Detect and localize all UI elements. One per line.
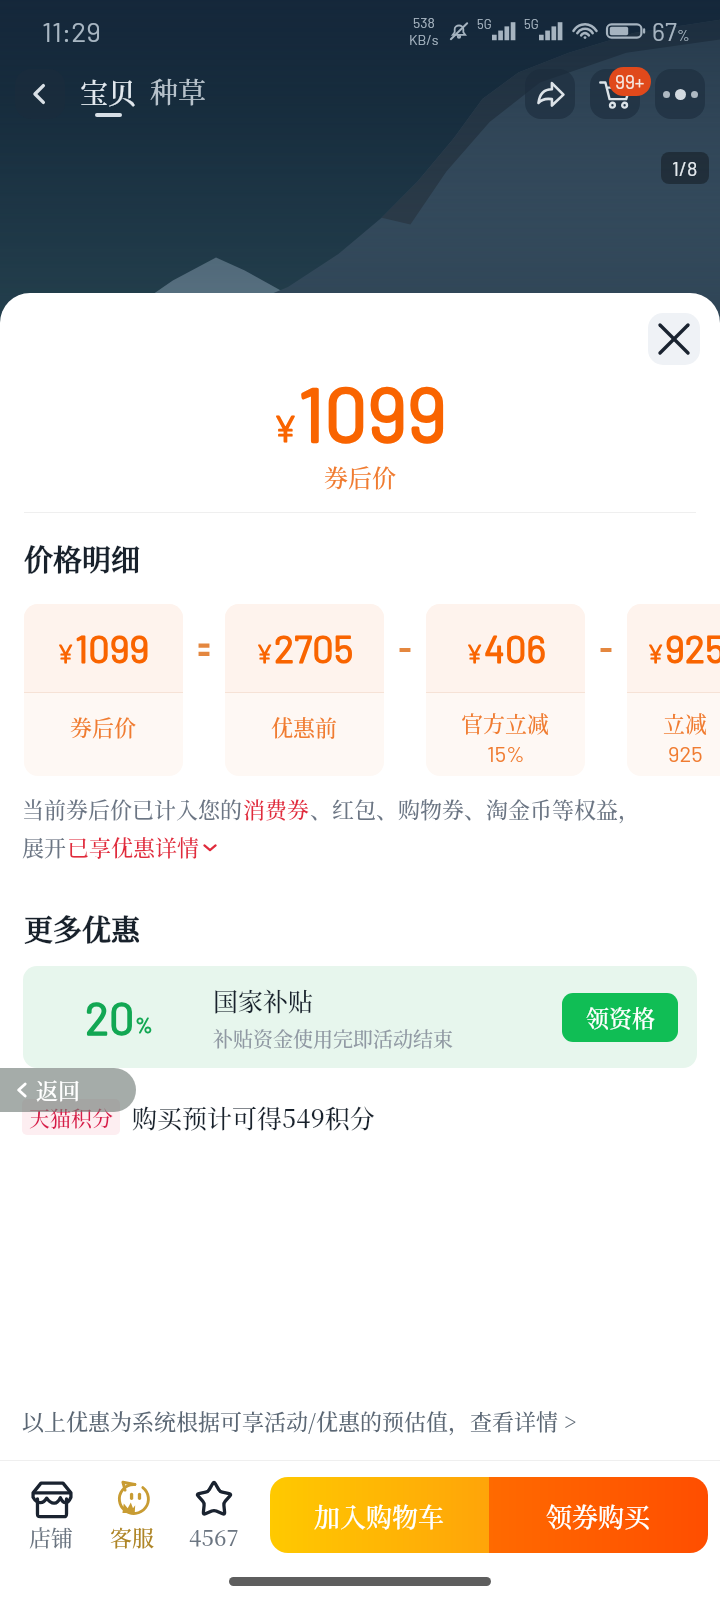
- staticText: ¥: [273, 406, 298, 449]
- button[interactable]: 加入购物车: [270, 1477, 489, 1553]
- button[interactable]: 4567: [173, 1477, 254, 1553]
- button[interactable]: 领券购买: [489, 1477, 708, 1553]
- button[interactable]: 天猫积分: [29, 1102, 113, 1132]
- staticText: 更多优惠: [24, 908, 141, 950]
- staticText: %: [135, 1012, 153, 1037]
- button[interactable]: 客服: [92, 1477, 173, 1553]
- button[interactable]: ¥: [225, 604, 384, 776]
- staticText: 20: [85, 990, 135, 1044]
- staticText: 、红包、购物券、淘金币等权益，: [310, 793, 641, 825]
- staticText: %: [677, 26, 690, 44]
- button[interactable]: ¥: [426, 604, 585, 776]
- staticText: 购买预计可得549积分: [132, 1099, 375, 1135]
- staticText: 已享优惠详情: [67, 831, 200, 863]
- staticText: 宝贝: [80, 72, 137, 112]
- staticText: 券后价: [324, 459, 396, 493]
- staticText: 11:29: [42, 14, 101, 48]
- button[interactable]: 以上优惠为系统根据可享活动/优惠的预估值，查看详情 >: [22, 1405, 577, 1437]
- staticText: 返回: [36, 1074, 81, 1106]
- staticText: ¥: [57, 638, 75, 668]
- staticText: KB/s: [409, 31, 439, 48]
- staticText: 加入购物车: [314, 1497, 445, 1534]
- staticText: 当前券后价已计入您的: [22, 793, 243, 825]
- staticText: 5G: [524, 16, 539, 32]
- staticText: 1/8: [672, 156, 698, 180]
- staticText: 67: [652, 16, 677, 46]
- button[interactable]: 领资格: [562, 993, 678, 1042]
- staticText: 15%: [487, 740, 525, 766]
- staticText: 99+: [615, 70, 645, 93]
- button[interactable]: 返回: [0, 1068, 136, 1112]
- staticText: 客服: [110, 1521, 155, 1553]
- staticText: 1099: [75, 625, 150, 671]
- staticText: 925: [665, 625, 720, 671]
- staticText: 店铺: [29, 1521, 74, 1553]
- staticText: 538: [413, 14, 435, 31]
- staticText: 2705: [274, 625, 354, 671]
- button[interactable]: 宝贝: [80, 72, 137, 117]
- staticText: 官方立减: [461, 707, 550, 739]
- staticText: 国家补贴: [213, 982, 314, 1018]
- staticText: 优惠前: [271, 711, 338, 743]
- button[interactable]: Back: [15, 69, 65, 119]
- staticText: 925: [668, 740, 703, 766]
- button[interactable]: Cart: [590, 69, 640, 119]
- button[interactable]: ¥: [627, 604, 720, 776]
- staticText: 4567: [189, 1521, 239, 1553]
- staticText: ¥: [647, 638, 665, 668]
- staticText: 补贴资金使用完即活动结束: [213, 1024, 453, 1053]
- staticText: ¥: [256, 638, 274, 668]
- staticText: 天猫积分: [29, 1102, 113, 1132]
- button[interactable]: Close: [648, 313, 700, 365]
- staticText: 5G: [477, 16, 492, 32]
- staticText: 消费券: [243, 793, 310, 825]
- button[interactable]: ¥: [24, 604, 183, 776]
- staticText: ¥: [466, 638, 484, 668]
- staticText: 406: [484, 625, 546, 671]
- button[interactable]: More: [655, 69, 705, 119]
- button[interactable]: 种草: [150, 71, 207, 111]
- staticText: 1099: [298, 366, 447, 457]
- button[interactable]: Share: [525, 69, 575, 119]
- button[interactable]: 店铺: [11, 1477, 92, 1553]
- staticText: 领资格: [586, 1001, 655, 1034]
- staticText: 领券购买: [546, 1497, 651, 1534]
- button[interactable]: 20: [23, 966, 697, 1068]
- staticText: 立减: [663, 707, 708, 739]
- staticText: 券后价: [70, 711, 137, 743]
- staticText: 展开: [22, 831, 67, 863]
- staticText: 价格明细: [24, 538, 141, 580]
